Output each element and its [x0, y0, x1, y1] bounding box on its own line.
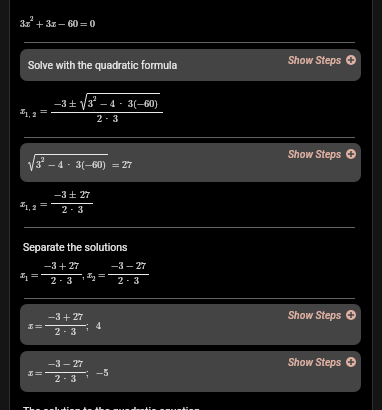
staticText: Show Steps	[288, 356, 342, 368]
staticText: 4	[110, 96, 115, 110]
staticText: −	[126, 258, 134, 272]
staticText: 27	[122, 157, 132, 171]
staticText: x	[51, 16, 56, 30]
staticText: ·	[65, 157, 73, 171]
staticText: 3	[46, 16, 51, 30]
staticText: x	[20, 267, 25, 281]
staticText: =	[40, 196, 48, 210]
staticText: ·	[68, 202, 76, 216]
other: Show steps	[346, 357, 356, 367]
staticText: +	[59, 258, 67, 272]
staticText: 3(−60)	[128, 96, 158, 110]
staticText: 3	[20, 16, 25, 30]
other: Show steps	[346, 310, 356, 320]
staticText: ;	[86, 318, 89, 332]
staticText: =	[31, 267, 39, 281]
button[interactable]: 3	[20, 143, 361, 182]
staticText: +	[63, 309, 71, 323]
staticText: −3	[48, 356, 61, 370]
staticText: =	[112, 157, 120, 171]
staticText: 3	[71, 324, 76, 338]
staticText: 2	[30, 13, 34, 23]
staticText: 3	[88, 96, 93, 110]
staticText: −3	[48, 309, 61, 323]
staticText: =	[98, 267, 106, 281]
staticText: −	[100, 96, 108, 110]
staticText: −	[63, 356, 71, 370]
staticText: 0	[90, 16, 95, 30]
staticText: 3(−60)	[76, 157, 106, 171]
staticText: =	[35, 365, 43, 379]
staticText: 3	[78, 202, 83, 216]
staticText: +	[36, 16, 44, 30]
button[interactable]: x	[20, 351, 361, 392]
button[interactable]: x	[20, 304, 361, 345]
staticText: 1, 2	[25, 109, 37, 119]
staticText: 2	[118, 273, 123, 287]
other: Show steps	[346, 149, 356, 159]
staticText: 2	[62, 202, 67, 216]
button[interactable]: Solve with the quadratic formula	[20, 49, 361, 81]
staticText: Separate the solutions	[23, 241, 128, 253]
staticText: −3	[111, 258, 124, 272]
staticText: ·	[124, 273, 132, 287]
staticText: x	[20, 103, 25, 117]
staticText: ±	[69, 96, 77, 110]
staticText: 27	[73, 309, 83, 323]
staticText: The solution to the quadratic equation	[23, 405, 201, 410]
staticText: Show Steps	[288, 309, 342, 321]
staticText: −	[58, 16, 66, 30]
other: Show steps	[346, 55, 356, 65]
staticText: Show Steps	[288, 54, 342, 66]
staticText: 27	[73, 356, 83, 370]
staticText: Show Steps	[288, 148, 342, 160]
staticText: ±	[69, 187, 77, 201]
staticText: 1	[25, 273, 29, 283]
staticText: 2	[51, 273, 56, 287]
staticText: 27	[80, 187, 90, 201]
staticText: ;	[86, 365, 89, 379]
staticText: −3	[44, 258, 57, 272]
staticText: 2	[93, 93, 97, 103]
staticText: −	[48, 157, 56, 171]
staticText: ,	[82, 267, 85, 281]
staticText: ·	[103, 111, 111, 125]
staticText: x	[87, 267, 92, 281]
staticText: 3	[134, 273, 139, 287]
staticText: x	[28, 318, 33, 332]
staticText: =	[40, 103, 48, 117]
staticText: −5	[96, 365, 109, 379]
staticText: 27	[69, 258, 79, 272]
staticText: 3	[36, 157, 41, 171]
staticText: 2	[97, 111, 102, 125]
staticText: =	[35, 318, 43, 332]
staticText: 2	[92, 273, 96, 283]
staticText: 2	[41, 154, 45, 164]
staticText: ·	[61, 371, 69, 385]
staticText: x	[25, 16, 30, 30]
staticText: 60	[68, 16, 78, 30]
staticText: ·	[57, 273, 65, 287]
staticText: Solve with the quadratic formula	[28, 59, 178, 71]
staticText: 2	[55, 371, 60, 385]
staticText: x	[20, 196, 25, 210]
staticText: 3	[71, 371, 76, 385]
staticText: 27	[136, 258, 146, 272]
staticText: 1, 2	[25, 202, 37, 212]
staticText: 4	[58, 157, 63, 171]
staticText: 2	[55, 324, 60, 338]
staticText: ·	[117, 96, 125, 110]
staticText: −3	[54, 187, 67, 201]
staticText: ·	[61, 324, 69, 338]
staticText: 4	[96, 318, 101, 332]
staticText: =	[80, 16, 88, 30]
staticText: x	[28, 365, 33, 379]
staticText: 3	[113, 111, 118, 125]
staticText: −3	[54, 96, 67, 110]
staticText: 3	[67, 273, 72, 287]
